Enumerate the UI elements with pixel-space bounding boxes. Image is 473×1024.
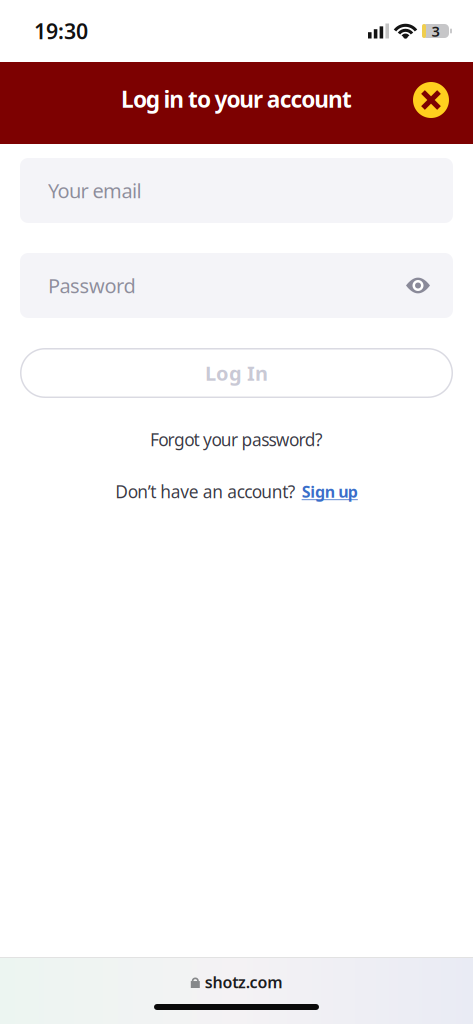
staticText: Sign up	[302, 481, 358, 502]
button[interactable]: Sign up	[302, 481, 358, 502]
staticText: 3	[431, 21, 439, 41]
staticText: Forgot your password?	[150, 428, 323, 451]
staticText: Password	[48, 272, 135, 299]
button[interactable]: Forgot your password?	[150, 428, 323, 451]
staticText: Don’t have an account?	[115, 480, 296, 503]
staticText: Log in to your account	[121, 84, 352, 114]
button[interactable]: Show password	[406, 278, 453, 293]
button[interactable]: Website address shotz.com	[191, 971, 282, 993]
staticText: Your email	[48, 177, 141, 204]
staticText: shotz.com	[205, 971, 282, 993]
button[interactable]: Close	[413, 82, 449, 118]
button[interactable]: Log In	[20, 348, 453, 398]
staticText: Log In	[205, 360, 268, 386]
staticText: 19:30	[34, 17, 88, 45]
